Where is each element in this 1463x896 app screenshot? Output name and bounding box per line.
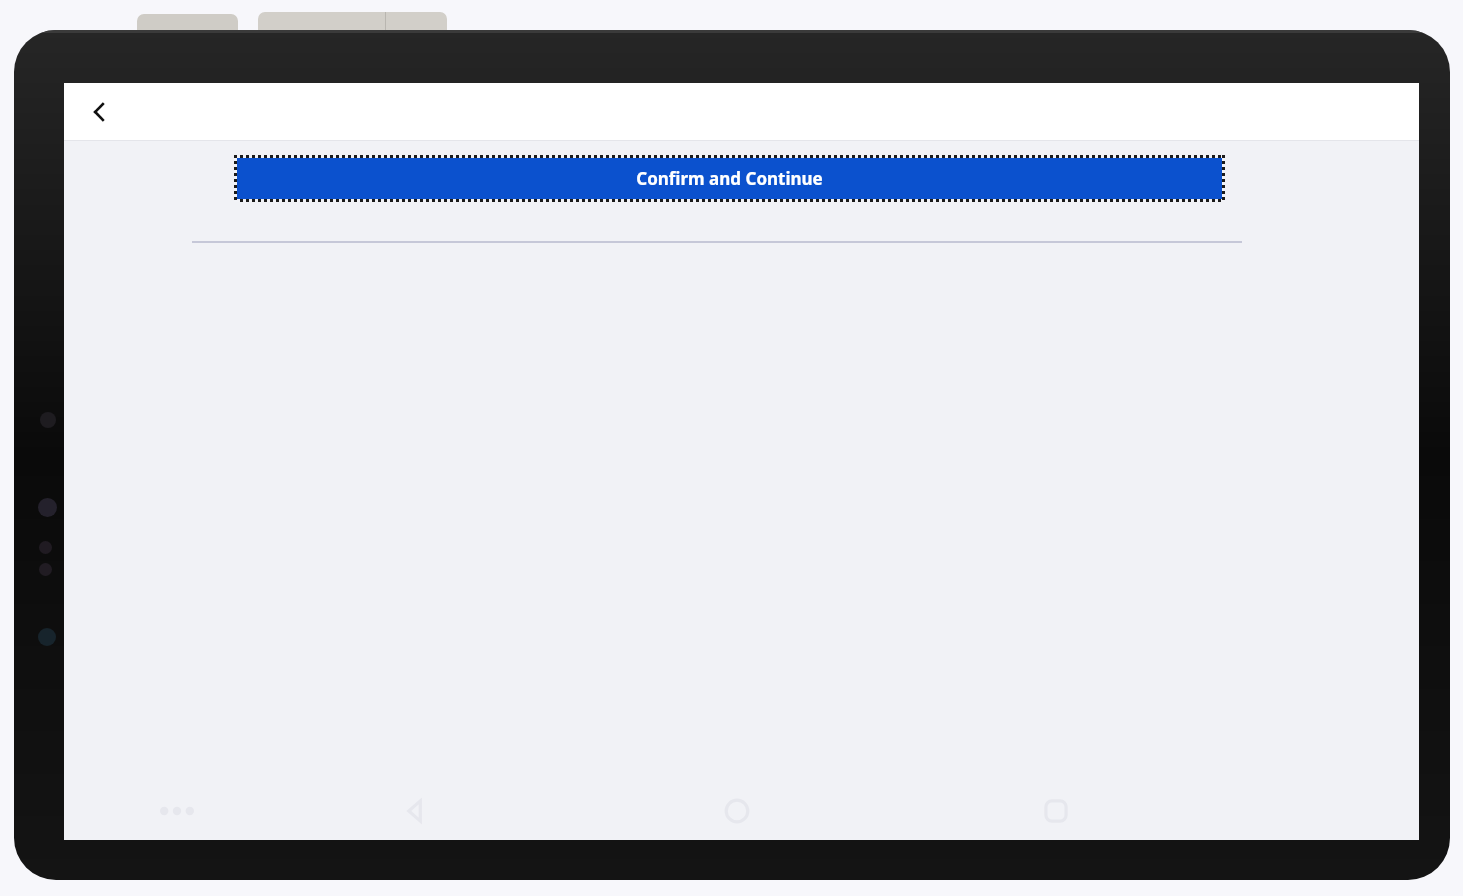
- button[interactable]: Back: [72, 84, 128, 140]
- button[interactable]: Back: [398, 793, 434, 829]
- button[interactable]: Confirm and Continue: [234, 155, 1225, 202]
- button[interactable]: Recent apps: [1038, 793, 1074, 829]
- button[interactable]: Home: [719, 793, 755, 829]
- staticText: Confirm and Continue: [636, 167, 823, 190]
